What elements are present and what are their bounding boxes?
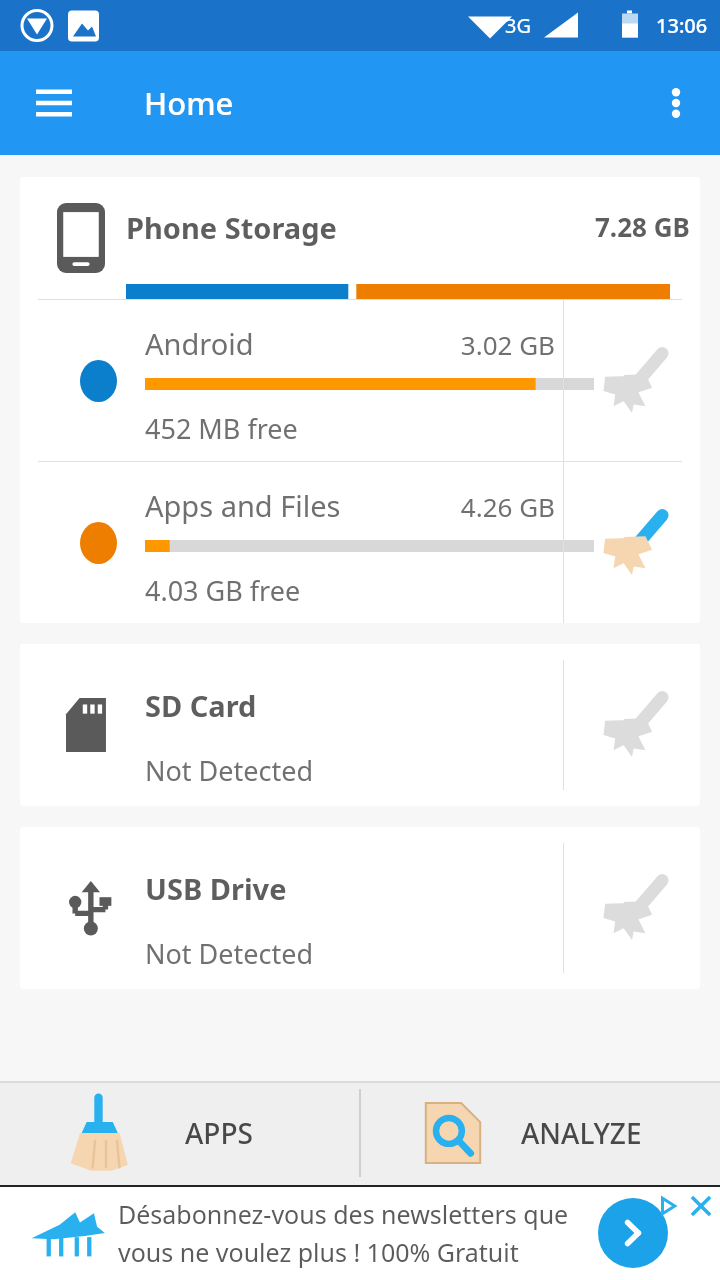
staticText: 7.28 GB [595, 209, 690, 244]
staticText: Not Detected [145, 752, 314, 789]
staticText: ANALYZE [521, 1114, 642, 1152]
staticText: Désabonnez-vous des newsletters que [118, 1197, 569, 1231]
button[interactable]: Clean SD Card [563, 644, 700, 806]
staticText: vous ne voulez plus ! 100% Gratuit [118, 1235, 519, 1269]
staticText: USB Drive [145, 869, 287, 908]
staticText: 13:06 [656, 12, 708, 39]
button[interactable]: Android [20, 300, 700, 461]
button[interactable]: Apps and Files [20, 462, 700, 623]
button[interactable]: ANALYZE [361, 1081, 720, 1185]
staticText: 4.26 GB [460, 489, 555, 524]
staticText: SD Card [145, 686, 257, 725]
staticText: Android [145, 324, 254, 363]
staticText: Not Detected [145, 935, 314, 972]
staticText: 452 MB free [145, 410, 298, 447]
button[interactable]: Clean Apps and Files [563, 462, 700, 623]
button[interactable]: Clean USB Drive [563, 827, 700, 989]
button[interactable]: Open navigation menu [18, 67, 90, 139]
button[interactable]: More options [642, 69, 710, 137]
button[interactable]: Open advertisement [598, 1198, 668, 1268]
staticText: 4.03 GB free [145, 572, 301, 609]
button[interactable]: Clean Android [563, 300, 700, 461]
staticText: APPS [185, 1114, 253, 1152]
button[interactable]: Phone Storage [20, 177, 700, 299]
staticText: Phone Storage [126, 208, 337, 247]
staticText: 3.02 GB [460, 327, 555, 362]
staticText: Home [144, 82, 234, 124]
button[interactable]: USB Drive [20, 827, 700, 989]
staticText: Apps and Files [145, 486, 341, 525]
button[interactable]: SD Card [20, 644, 700, 806]
button[interactable]: APPS [0, 1081, 359, 1185]
staticText: 3G [505, 12, 531, 39]
